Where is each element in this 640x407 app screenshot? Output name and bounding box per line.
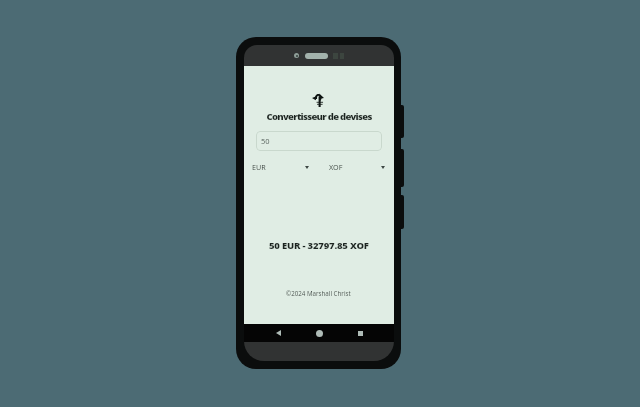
button[interactable]: Home <box>299 324 340 342</box>
staticText: 50 EUR - 32797.85 XOF <box>269 239 369 252</box>
staticText: Convertisseur de devises <box>266 110 372 123</box>
staticText: 50 <box>261 136 270 146</box>
staticText: ©2024 Marshall Christ <box>286 289 351 297</box>
button[interactable]: EUR <box>249 159 312 175</box>
staticText: EUR <box>252 162 266 172</box>
staticText: XOF <box>329 162 343 172</box>
button[interactable]: Back <box>257 324 299 342</box>
button[interactable]: Recent apps <box>340 324 381 342</box>
button[interactable]: 50 <box>256 131 382 151</box>
button[interactable]: XOF <box>326 159 388 175</box>
